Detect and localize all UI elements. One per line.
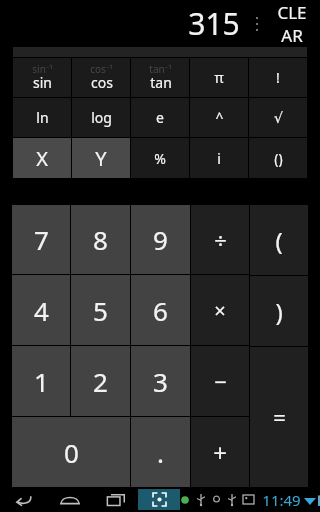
button[interactable]: π: [190, 58, 248, 97]
button[interactable]: 0: [12, 417, 130, 487]
button[interactable]: Screenshot: [138, 489, 180, 510]
staticText: 0: [64, 435, 79, 470]
staticText: 3: [153, 364, 168, 399]
staticText: Y: [95, 145, 107, 172]
staticText: 7: [34, 222, 49, 257]
button[interactable]: 3: [131, 346, 190, 416]
button[interactable]: %: [131, 138, 189, 178]
staticText: %: [154, 149, 166, 168]
staticText: cos: [91, 73, 113, 92]
button[interactable]: ×: [191, 275, 249, 345]
button[interactable]: More options: [250, 7, 264, 41]
staticText: 6: [153, 293, 168, 328]
staticText: 2: [93, 364, 108, 399]
button[interactable]: (): [249, 138, 307, 178]
staticText: ^: [215, 108, 224, 127]
button[interactable]: ): [250, 276, 308, 346]
staticText: !: [276, 68, 280, 87]
button[interactable]: 1: [12, 346, 70, 416]
button[interactable]: Y: [72, 138, 130, 178]
staticText: CLE: [277, 1, 307, 24]
staticText: 9: [153, 222, 168, 257]
staticText: 1: [34, 364, 49, 399]
staticText: sin⁻¹: [32, 62, 53, 76]
button[interactable]: +: [191, 417, 249, 487]
staticText: ): [275, 295, 283, 328]
button[interactable]: ÷: [191, 205, 249, 274]
button[interactable]: 2: [71, 346, 130, 416]
staticText: tan: [150, 73, 172, 92]
staticText: ÷: [214, 225, 227, 255]
button[interactable]: !: [249, 58, 307, 97]
staticText: i: [217, 149, 221, 168]
button[interactable]: −: [191, 346, 249, 416]
button[interactable]: 7: [12, 205, 70, 274]
staticText: ln: [36, 108, 49, 127]
button[interactable]: ln: [13, 98, 71, 137]
button[interactable]: 9: [131, 205, 190, 274]
staticText: √: [274, 110, 283, 126]
button[interactable]: √: [249, 98, 307, 137]
button[interactable]: log: [72, 98, 130, 137]
staticText: ×: [214, 297, 226, 324]
staticText: (): [274, 149, 283, 168]
staticText: +: [213, 436, 227, 469]
button[interactable]: cos⁻¹: [72, 58, 130, 97]
staticText: 5: [93, 293, 108, 328]
staticText: π: [214, 68, 224, 87]
staticText: (: [275, 224, 283, 257]
staticText: 11:49: [262, 490, 301, 510]
staticText: X: [36, 145, 48, 172]
button[interactable]: Home: [54, 487, 86, 512]
button[interactable]: 5: [71, 275, 130, 345]
staticText: log: [91, 108, 112, 127]
staticText: tan⁻¹: [149, 62, 172, 76]
button[interactable]: sin⁻¹: [13, 58, 71, 97]
button[interactable]: e: [131, 98, 189, 137]
button[interactable]: i: [190, 138, 248, 178]
button[interactable]: Recent apps: [100, 487, 132, 512]
button[interactable]: 4: [12, 275, 70, 345]
button[interactable]: CLE: [270, 0, 314, 47]
button[interactable]: =: [250, 347, 308, 487]
button[interactable]: 6: [131, 275, 190, 345]
staticText: 4: [34, 293, 49, 328]
staticText: 315: [188, 3, 240, 44]
button[interactable]: Back: [8, 487, 40, 512]
button[interactable]: .: [131, 417, 190, 487]
staticText: e: [156, 108, 164, 127]
button[interactable]: (: [250, 205, 308, 275]
staticText: .: [157, 435, 164, 470]
staticText: AR: [281, 24, 303, 47]
staticText: cos⁻¹: [90, 62, 113, 76]
button[interactable]: X: [13, 138, 71, 178]
button[interactable]: 8: [71, 205, 130, 274]
button[interactable]: ^: [190, 98, 248, 137]
staticText: −: [214, 366, 227, 396]
staticText: =: [273, 402, 286, 432]
button[interactable]: tan⁻¹: [131, 58, 189, 97]
staticText: 8: [93, 222, 108, 257]
staticText: sin: [33, 73, 52, 92]
